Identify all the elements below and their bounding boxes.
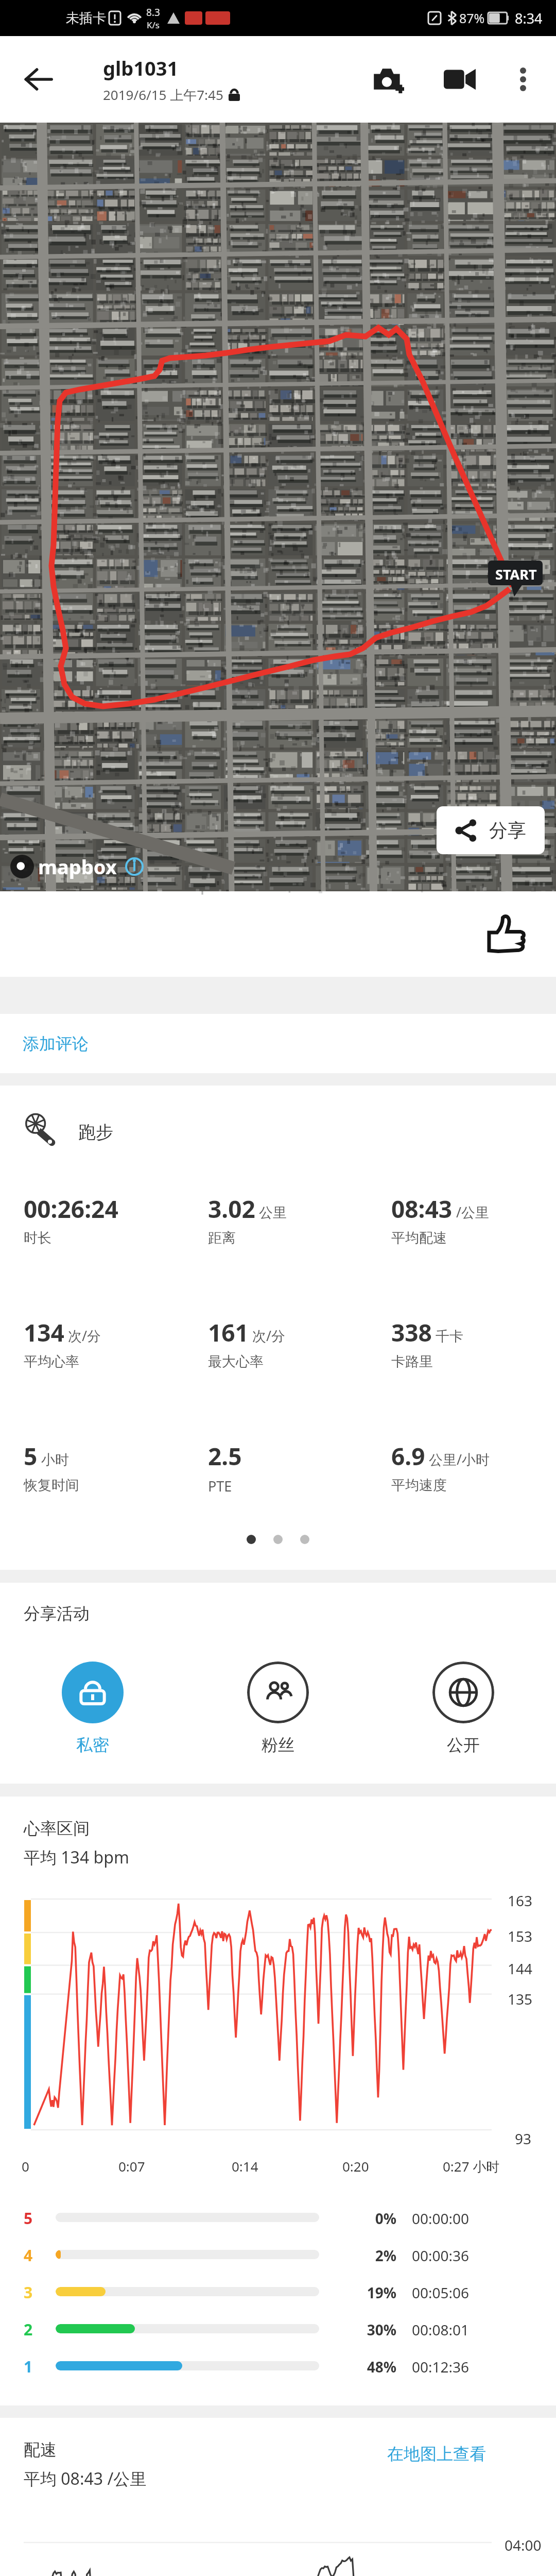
staticText: 00:12:36: [412, 2357, 470, 2377]
staticText: 2019/6/15 上午7:45: [103, 86, 223, 104]
button[interactable]: Back: [10, 36, 67, 123]
staticText: 平均配速: [391, 1229, 447, 1247]
button[interactable]: Add video: [431, 36, 488, 123]
staticText: 5: [24, 2208, 33, 2229]
staticText: 163: [508, 1891, 533, 1910]
staticText: 粉丝: [262, 1735, 294, 1755]
button[interactable]: 在地图上查看: [383, 2439, 490, 2468]
staticText: 私密: [76, 1735, 109, 1755]
staticText: K/s: [147, 19, 160, 31]
staticText: 04:00: [505, 2535, 542, 2555]
staticText: 8:34: [515, 9, 543, 28]
staticText: 00:00:00: [412, 2209, 470, 2228]
staticText: 小时: [38, 1450, 69, 1469]
staticText: 分享: [489, 819, 526, 842]
staticText: 跑步: [78, 1121, 113, 1143]
staticText: 2: [24, 2319, 33, 2340]
staticText: 平均速度: [391, 1477, 447, 1494]
staticText: 4: [24, 2245, 33, 2266]
staticText: 2%: [329, 2246, 396, 2265]
button[interactable]: Add photo: [360, 36, 417, 123]
staticText: 48%: [329, 2357, 396, 2377]
staticText: 93: [515, 2129, 532, 2148]
button[interactable]: Like: [480, 907, 533, 961]
button[interactable]: 粉丝: [247, 1662, 309, 1755]
staticText: 0: [22, 2157, 29, 2175]
staticText: 时长: [24, 1229, 51, 1247]
staticText: 恢复时间: [24, 1477, 79, 1494]
staticText: 未插卡: [66, 10, 106, 27]
staticText: 0:14: [232, 2157, 258, 2175]
staticText: 00:26:24: [24, 1193, 118, 1225]
staticText: 次/分: [64, 1326, 101, 1345]
button[interactable]: 公开: [432, 1662, 494, 1755]
staticText: 平均 134 bpm: [24, 1846, 129, 1869]
staticText: 0:20: [342, 2157, 369, 2175]
staticText: 153: [508, 1926, 533, 1946]
staticText: 0%: [329, 2209, 396, 2228]
staticText: 19%: [329, 2283, 396, 2302]
staticText: 公开: [447, 1735, 480, 1755]
staticText: 在地图上查看: [387, 2444, 486, 2464]
staticText: 134: [24, 1316, 64, 1349]
staticText: glb1031: [103, 55, 179, 81]
staticText: 2.5: [208, 1440, 242, 1472]
staticText: /公里: [453, 1202, 490, 1222]
staticText: 平均 08:43 /公里: [24, 2467, 147, 2490]
staticText: 3.02: [208, 1193, 255, 1225]
staticText: 6.9: [391, 1440, 425, 1472]
staticText: 分享活动: [24, 1603, 90, 1624]
staticText: 平均心率: [24, 1353, 79, 1370]
staticText: 公里: [255, 1202, 287, 1222]
staticText: START: [495, 565, 537, 584]
button[interactable]: More options: [498, 36, 548, 123]
staticText: 135: [508, 1989, 533, 2009]
staticText: 次/分: [249, 1326, 286, 1345]
staticText: 添加评论: [23, 1033, 89, 1054]
staticText: 最大心率: [208, 1353, 264, 1370]
staticText: 87%: [459, 9, 485, 27]
staticText: 8.3: [146, 6, 160, 19]
staticText: PTE: [208, 1477, 232, 1496]
staticText: 144: [508, 1959, 533, 1978]
staticText: 卡路里: [391, 1353, 433, 1370]
button[interactable]: 分享: [437, 806, 545, 854]
staticText: 公里/小时: [425, 1450, 490, 1469]
staticText: 08:43: [391, 1193, 453, 1225]
staticText: 1: [24, 2356, 33, 2377]
staticText: 338: [391, 1316, 432, 1349]
staticText: 00:05:06: [412, 2283, 470, 2302]
button[interactable]: 私密: [62, 1662, 124, 1755]
staticText: 00:00:36: [412, 2246, 470, 2265]
staticText: 161: [208, 1316, 249, 1349]
staticText: 千卡: [432, 1326, 464, 1345]
staticText: 0:07: [118, 2157, 145, 2175]
staticText: 3: [24, 2282, 33, 2303]
staticText: 00:08:01: [412, 2320, 470, 2340]
staticText: 30%: [329, 2320, 396, 2340]
staticText: 5: [24, 1440, 38, 1472]
staticText: 配速: [24, 2439, 57, 2460]
staticText: 0:27 小时: [443, 2157, 500, 2176]
staticText: 心率区间: [24, 1818, 90, 1839]
staticText: mapbox: [38, 853, 117, 880]
button[interactable]: 添加评论: [0, 1014, 556, 1073]
staticText: 距离: [208, 1229, 236, 1247]
